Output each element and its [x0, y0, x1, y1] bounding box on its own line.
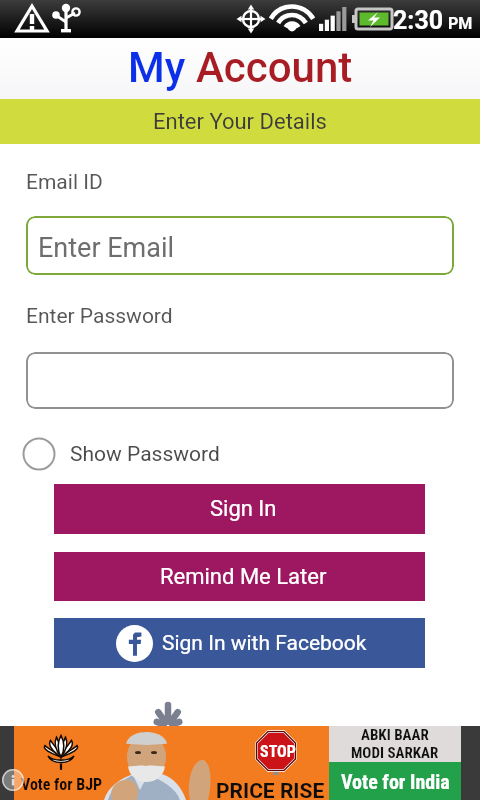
staticText: Vote for India: [341, 770, 450, 793]
button[interactable]: [26, 352, 454, 409]
other: Ad info: [2, 769, 24, 791]
staticText: STOP: [260, 742, 296, 761]
staticText: Remind Me Later: [160, 564, 327, 590]
staticText: Enter Your Details: [153, 109, 327, 135]
staticText: Sign In with Facebook: [162, 631, 367, 656]
staticText: Vote for BJP: [21, 775, 103, 794]
staticText: Sign In: [210, 496, 277, 522]
staticText: ABKI BAAR: [361, 726, 429, 744]
staticText: Account: [196, 43, 353, 92]
staticText: 2:30: [393, 6, 444, 35]
button[interactable]: Remind Me Later: [54, 552, 425, 601]
staticText: Enter Password: [26, 304, 173, 329]
button[interactable]: Show Password: [22, 437, 220, 471]
button[interactable]: Sign In with Facebook: [54, 618, 425, 668]
other: Loading: [153, 704, 183, 726]
staticText: Enter Email: [38, 232, 175, 264]
button[interactable]: Enter Email: [26, 216, 454, 275]
staticText: MODI SARKAR: [351, 744, 439, 762]
staticText: Email ID: [26, 170, 103, 195]
staticText: PRICE RISE: [216, 779, 325, 800]
button[interactable]: Sign In: [54, 484, 425, 534]
button[interactable]: Vote for BJP: [0, 726, 480, 800]
staticText: My: [128, 43, 196, 92]
staticText: Show Password: [70, 442, 220, 467]
staticText: PM: [448, 14, 473, 33]
